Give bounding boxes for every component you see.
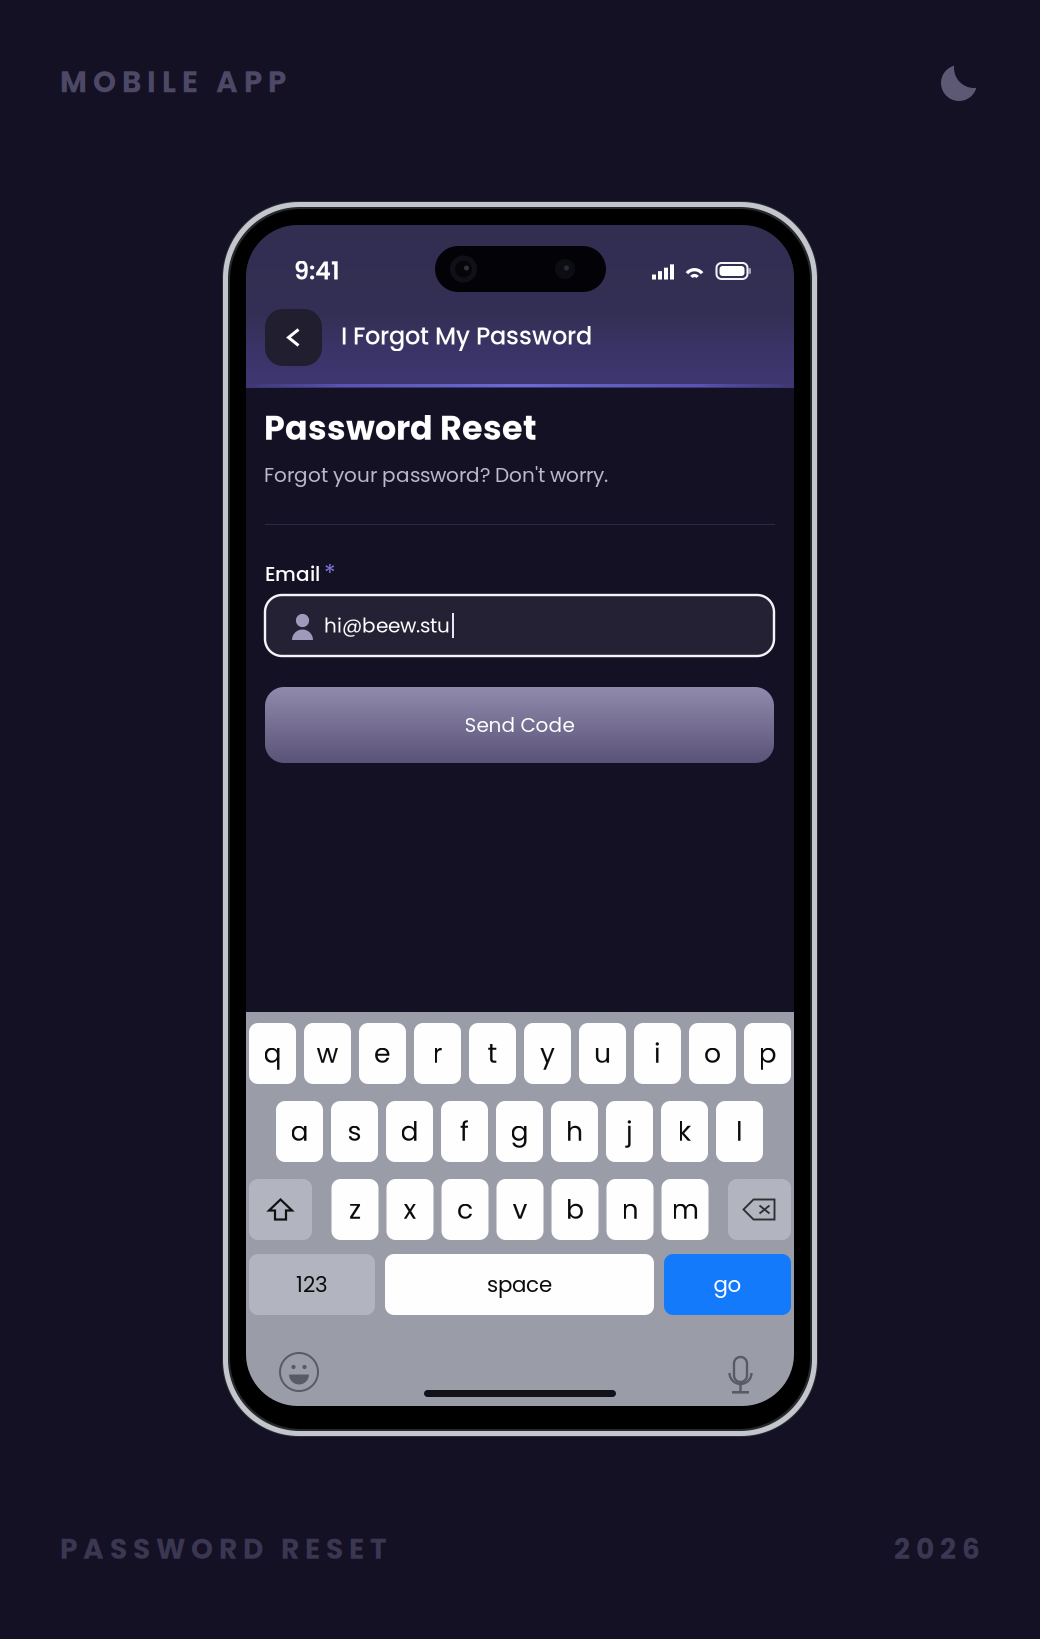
button[interactable]: f [441,1101,488,1162]
button[interactable]: Back [265,309,322,366]
staticText: s [347,1113,361,1150]
staticText: d [400,1113,418,1150]
button[interactable]: a [276,1101,323,1162]
button[interactable]: space [385,1254,654,1315]
staticText: p [758,1035,776,1072]
staticText: g [510,1113,528,1150]
button[interactable]: hi@beew.stu [265,595,774,656]
staticText: o [704,1035,721,1072]
button[interactable]: j [606,1101,653,1162]
staticText: u [594,1035,611,1072]
staticText: space [487,1270,552,1299]
button[interactable]: d [386,1101,433,1162]
staticText: M O B I L E A P P [60,61,286,103]
button[interactable]: Emoji keyboard [279,1352,319,1392]
staticText: c [457,1191,473,1228]
button[interactable]: i [634,1023,681,1084]
button[interactable]: h [551,1101,598,1162]
staticText: i [654,1035,661,1072]
staticText: t [487,1035,497,1072]
staticText: z [349,1191,361,1228]
staticText: go [713,1270,741,1299]
staticText: w [316,1035,338,1072]
button[interactable]: l [716,1101,763,1162]
staticText: b [566,1191,584,1228]
button[interactable]: o [689,1023,736,1084]
staticText: y [540,1035,555,1072]
button[interactable]: k [661,1101,708,1162]
staticText: * [324,557,336,591]
staticText: h [566,1113,583,1150]
staticText: 123 [296,1270,328,1299]
button[interactable]: p [744,1023,791,1084]
staticText: r [432,1035,442,1072]
staticText: 2 0 2 6 [894,1529,980,1569]
button[interactable]: m [661,1179,708,1240]
button[interactable]: q [249,1023,296,1084]
button[interactable]: w [304,1023,351,1084]
staticText: Password Reset [264,405,537,451]
button[interactable]: 123 [249,1254,375,1315]
staticText: e [374,1035,391,1072]
button[interactable]: Send Code [265,687,774,763]
staticText: I Forgot My Password [341,319,592,353]
staticText: Forgot your password? Don't worry. [264,461,608,489]
button[interactable]: s [331,1101,378,1162]
button[interactable]: b [551,1179,598,1240]
staticText: v [512,1191,527,1228]
button[interactable]: r [414,1023,461,1084]
button[interactable]: z [331,1179,378,1240]
button[interactable]: t [469,1023,516,1084]
button[interactable]: e [359,1023,406,1084]
staticText: hi@beew.stu [324,611,450,639]
staticText: q [263,1035,281,1072]
staticText: l [736,1113,743,1150]
staticText: 9:41 [294,254,340,288]
staticText: Email [265,560,320,588]
button[interactable]: g [496,1101,543,1162]
staticText: a [290,1113,308,1150]
staticText: k [677,1113,691,1150]
button[interactable]: x [386,1179,433,1240]
button[interactable]: y [524,1023,571,1084]
button[interactable]: u [579,1023,626,1084]
button[interactable]: n [606,1179,653,1240]
button[interactable]: c [441,1179,488,1240]
staticText: n [621,1191,638,1228]
button[interactable]: Dictation [727,1356,754,1396]
staticText: f [460,1113,469,1150]
staticText: P A S S W O R D R E S E T [60,1529,387,1569]
button[interactable]: go [664,1254,791,1315]
button[interactable]: Toggle appearance [940,62,980,102]
staticText: x [403,1191,416,1228]
button[interactable]: Delete [728,1179,791,1240]
staticText: j [626,1113,633,1150]
button[interactable]: v [496,1179,543,1240]
staticText: Send Code [464,711,574,739]
staticText: m [671,1191,698,1228]
button[interactable]: Shift [249,1179,312,1240]
